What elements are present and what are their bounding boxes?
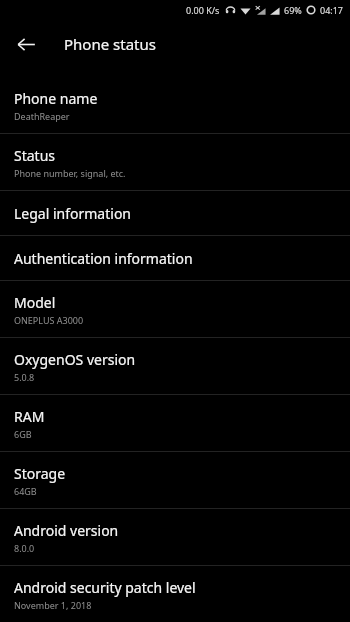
staticText: Android security patch level	[14, 578, 196, 597]
button[interactable]: Legal information	[0, 191, 350, 235]
button[interactable]: OxygenOS version	[0, 338, 350, 394]
staticText: Android version	[14, 521, 119, 540]
button[interactable]: Model	[0, 281, 350, 337]
button[interactable]: Storage	[0, 452, 350, 508]
staticText: 04:17	[320, 4, 344, 16]
button[interactable]: Authentication information	[0, 236, 350, 280]
button[interactable]: RAM	[0, 395, 350, 451]
staticText: 64GB	[14, 485, 37, 497]
staticText: Phone number, signal, etc.	[14, 167, 126, 179]
button[interactable]: Android security patch level	[0, 566, 350, 622]
button[interactable]: Android version	[0, 509, 350, 565]
staticText: November 1, 2018	[14, 599, 92, 611]
staticText: Status	[14, 146, 56, 165]
staticText: Storage	[14, 464, 66, 483]
staticText: RAM	[14, 407, 45, 426]
staticText: Phone name	[14, 89, 98, 108]
staticText: 8.0.0	[14, 542, 35, 554]
staticText: Model	[14, 293, 56, 312]
staticText: Legal information	[14, 204, 132, 223]
staticText: OxygenOS version	[14, 350, 136, 369]
staticText: 6GB	[14, 428, 32, 440]
staticText: Authentication information	[14, 249, 193, 268]
staticText: Phone status	[64, 34, 156, 54]
staticText: ONEPLUS A3000	[14, 314, 84, 326]
button[interactable]: Back	[10, 28, 42, 60]
staticText: 5.0.8	[14, 371, 35, 383]
staticText: 0.00 K/s	[186, 4, 220, 16]
button[interactable]: Phone name	[0, 77, 350, 133]
button[interactable]: Status	[0, 134, 350, 190]
staticText: 69%	[284, 4, 302, 16]
staticText: DeathReaper	[14, 110, 70, 122]
